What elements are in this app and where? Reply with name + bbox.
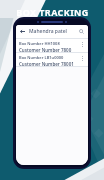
button[interactable]: Box Number LB1u0000 — [16, 53, 88, 66]
staticText: Mahendra patel — [29, 28, 78, 35]
button[interactable]: Back — [16, 25, 88, 38]
staticText: Customer Number 78001 — [19, 61, 74, 66]
button[interactable]: Back — [19, 28, 26, 35]
button[interactable]: Box Number HH1008 — [16, 39, 88, 52]
button[interactable]: More options — [79, 55, 85, 61]
button[interactable]: More options — [79, 41, 85, 47]
staticText: BOX TRACKING — [16, 6, 89, 18]
staticText: Customer Number 7800 — [19, 47, 72, 52]
staticText: Box Number LB1u0000 — [19, 55, 64, 60]
staticText: Box Number HH1008 — [19, 41, 60, 46]
button[interactable]: Search — [78, 28, 85, 35]
